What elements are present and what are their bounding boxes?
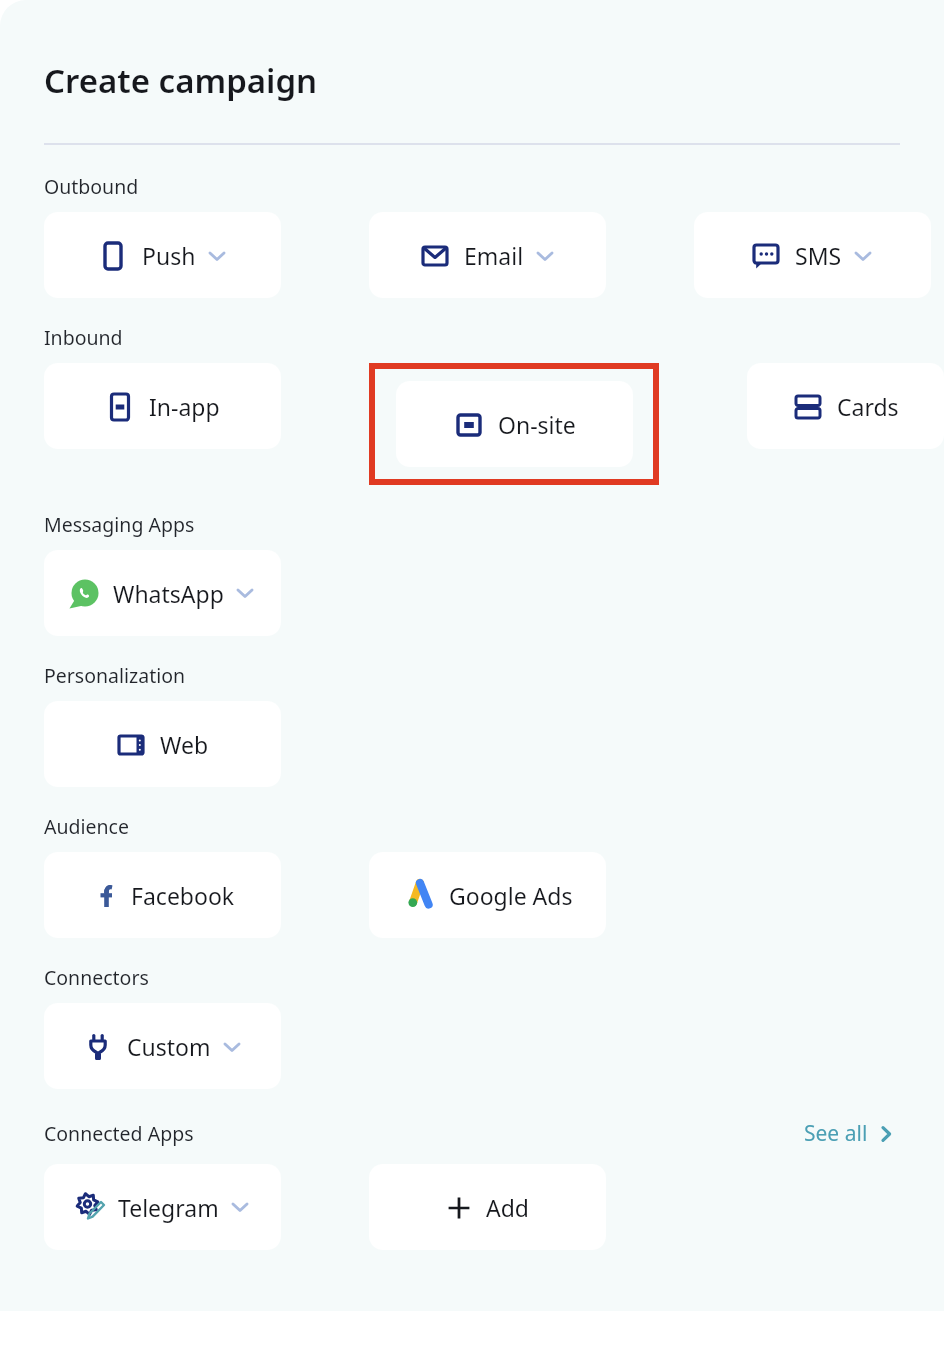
staticText: Messaging Apps <box>44 511 195 538</box>
button[interactable]: See all <box>800 1115 900 1152</box>
button[interactable]: WhatsApp <box>44 550 281 636</box>
staticText: Connectors <box>44 964 149 991</box>
staticText: Custom <box>127 1031 211 1062</box>
staticText: Personalization <box>44 662 186 689</box>
staticText: Facebook <box>131 880 235 911</box>
staticText: Create campaign <box>44 58 318 103</box>
button[interactable]: On-site <box>396 381 633 467</box>
button[interactable]: Web <box>44 701 281 787</box>
staticText: Web <box>160 729 209 760</box>
staticText: Email <box>464 240 524 271</box>
button[interactable]: Custom <box>44 1003 281 1089</box>
staticText: SMS <box>795 240 842 271</box>
staticText: On-site <box>498 409 576 440</box>
button[interactable]: Telegram <box>44 1164 281 1250</box>
button[interactable]: Google Ads <box>369 852 606 938</box>
staticText: Connected Apps <box>44 1120 194 1147</box>
staticText: See all <box>804 1119 868 1148</box>
button[interactable]: Add <box>369 1164 606 1250</box>
staticText: Telegram <box>118 1192 219 1223</box>
button[interactable]: SMS <box>694 212 931 298</box>
staticText: Add <box>486 1192 529 1223</box>
staticText: In-app <box>149 391 220 422</box>
staticText: Google Ads <box>449 880 573 911</box>
button[interactable]: Facebook <box>44 852 281 938</box>
staticText: Inbound <box>44 324 123 351</box>
staticText: Push <box>142 240 196 271</box>
staticText: Outbound <box>44 173 139 200</box>
button[interactable]: Push <box>44 212 281 298</box>
button[interactable]: Cards <box>747 363 944 449</box>
button[interactable]: In-app <box>44 363 281 449</box>
staticText: Audience <box>44 813 129 840</box>
staticText: WhatsApp <box>113 578 224 609</box>
button[interactable]: Email <box>369 212 606 298</box>
staticText: Cards <box>837 391 899 422</box>
